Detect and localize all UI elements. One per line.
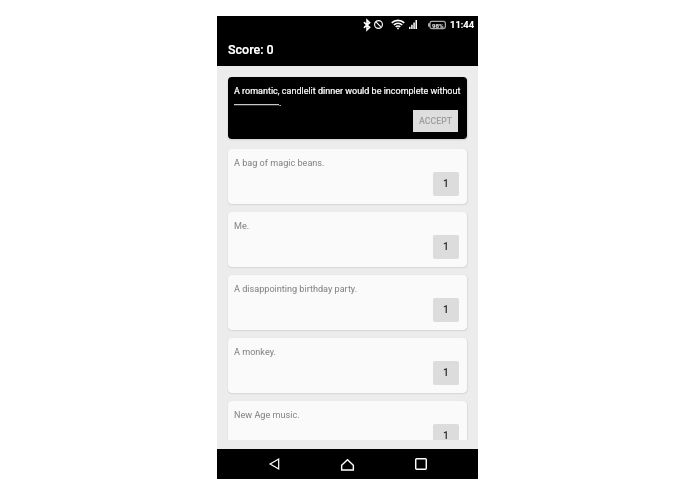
staticText: New Age music. — [234, 410, 300, 421]
button[interactable]: Back — [253, 449, 296, 479]
staticText: ACCEPT — [419, 116, 453, 126]
staticText: 1 — [443, 430, 449, 440]
button[interactable]: 1 — [433, 235, 459, 259]
button[interactable]: Me. — [228, 212, 467, 267]
button[interactable]: 1 — [433, 424, 459, 440]
staticText: 11:44 — [450, 19, 475, 30]
button[interactable]: ACCEPT — [413, 110, 458, 132]
button[interactable]: A monkey. — [228, 338, 467, 393]
staticText: A bag of magic beans. — [234, 158, 325, 169]
button[interactable]: A disappointing birthday party. — [228, 275, 467, 330]
staticText: 1 — [443, 178, 449, 190]
staticText: 1 — [443, 241, 449, 253]
staticText: . — [279, 98, 282, 109]
button[interactable]: Recents — [399, 449, 442, 479]
button[interactable]: 1 — [433, 172, 459, 196]
staticText: A disappointing birthday party. — [234, 284, 358, 295]
staticText: A romantic, candlelit dinner would be in… — [234, 86, 461, 97]
staticText: Me. — [234, 221, 250, 232]
staticText: 1 — [443, 304, 449, 316]
button[interactable]: 1 — [433, 361, 459, 385]
staticText: Score: 0 — [228, 42, 274, 57]
button[interactable]: Home — [326, 449, 369, 479]
staticText: A monkey. — [234, 347, 276, 358]
staticText: 98% — [432, 22, 444, 29]
button[interactable]: 1 — [433, 298, 459, 322]
staticText: 1 — [443, 367, 449, 379]
button[interactable]: A romantic, candlelit dinner would be in… — [228, 77, 467, 139]
button[interactable]: New Age music. — [228, 401, 467, 440]
button[interactable]: A bag of magic beans. — [228, 149, 467, 204]
